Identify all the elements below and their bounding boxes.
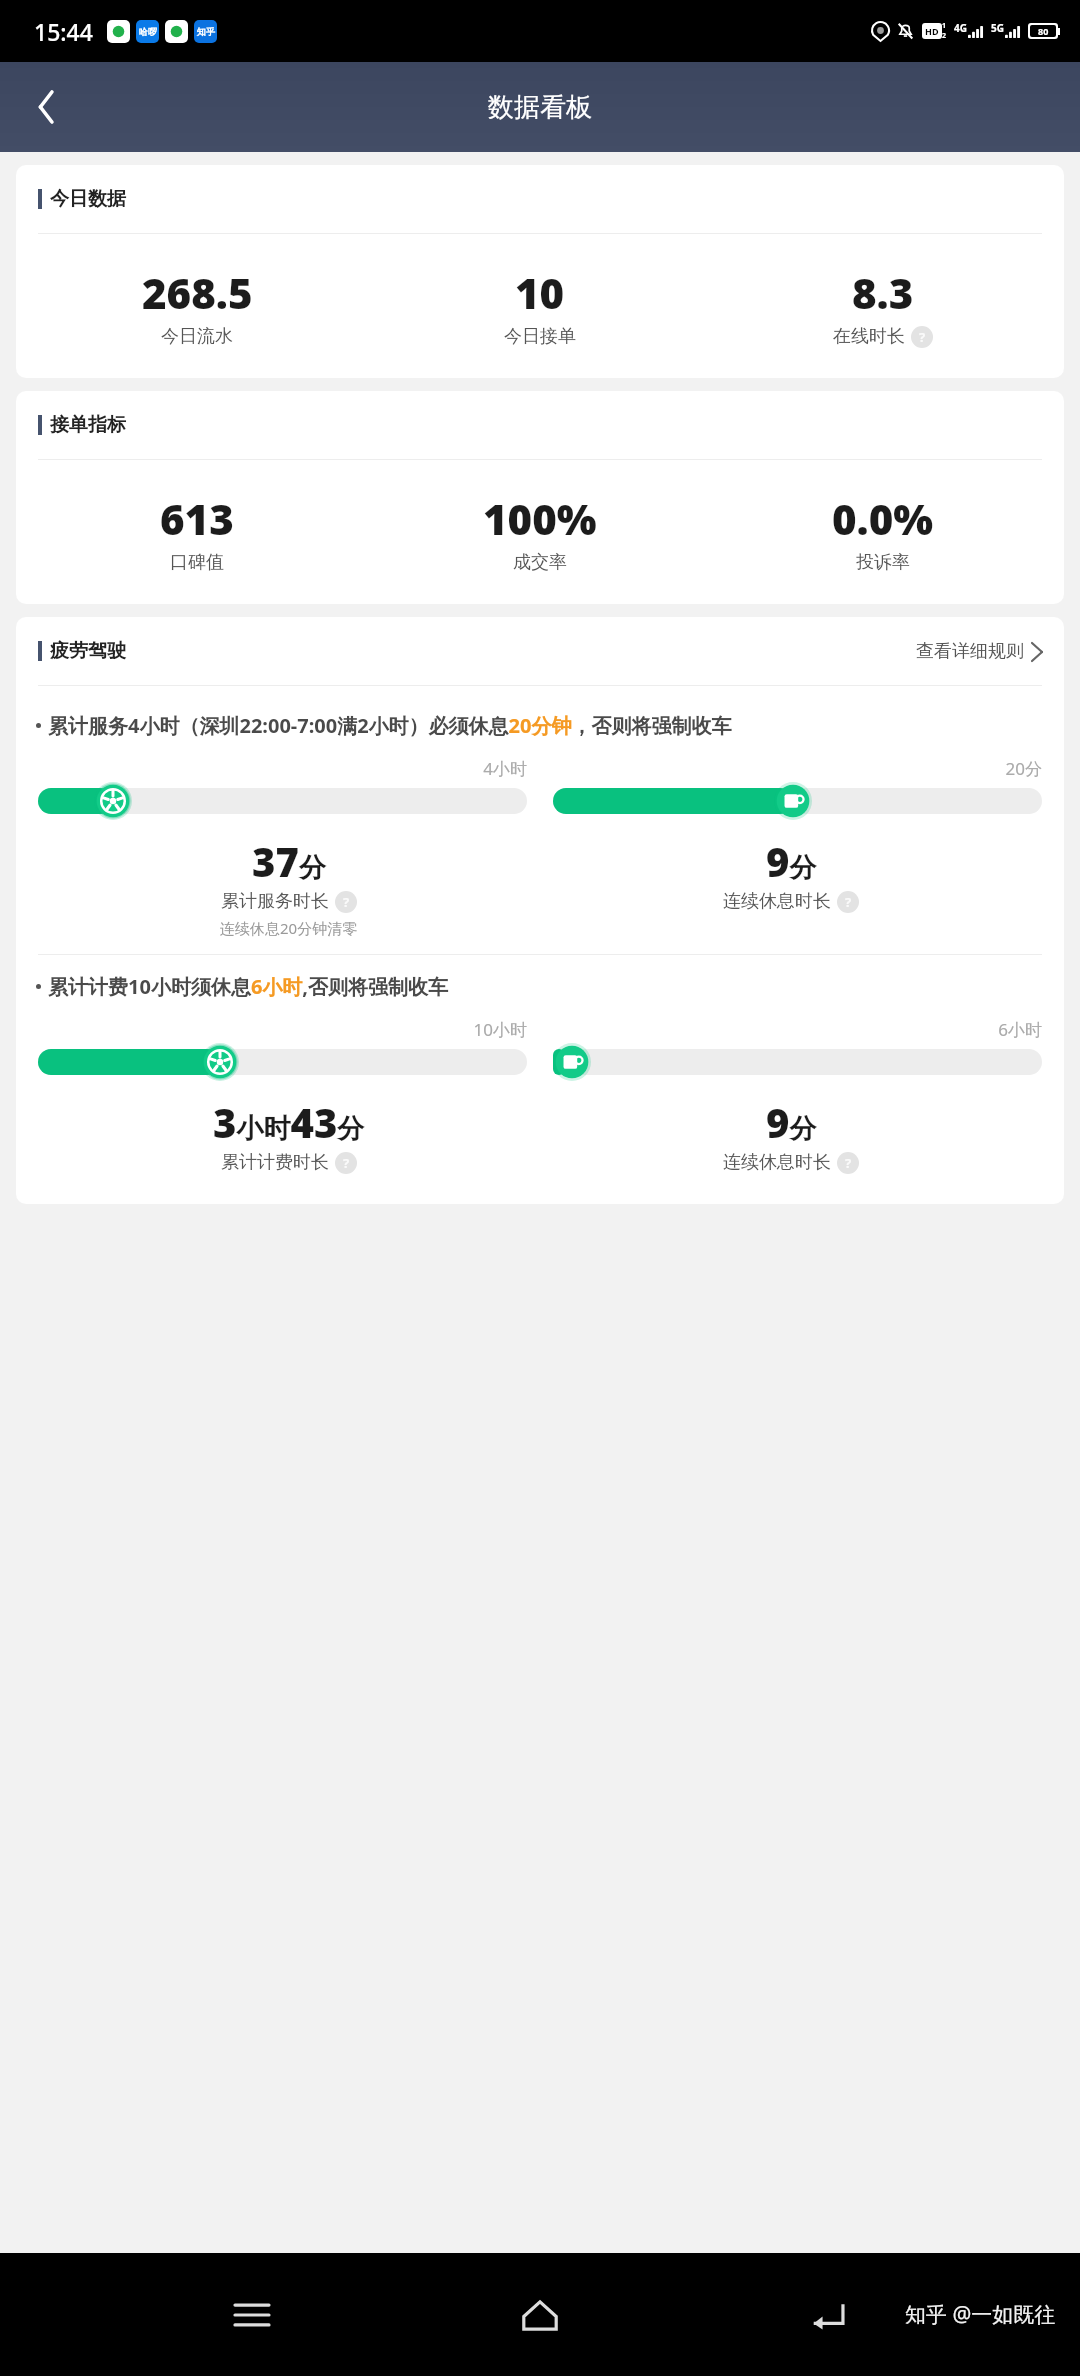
button[interactable]: Help (911, 326, 933, 348)
staticText: 4G (954, 21, 967, 35)
staticText: 100% (483, 490, 597, 547)
button[interactable]: Recent apps (216, 2279, 288, 2351)
button[interactable]: Help (335, 1152, 357, 1174)
staticText: 5G (991, 21, 1004, 35)
staticText: HD (925, 25, 939, 37)
staticText: 累计服务4小时（深圳22:00-7:00满2小时）必须休息20分钟，否则将强制收… (48, 712, 732, 739)
staticText: 10 (515, 264, 565, 321)
button[interactable]: Help (837, 891, 859, 913)
staticText: 哈啰 (139, 26, 157, 37)
staticText: ? (845, 1154, 852, 1172)
staticText: 6小时 (553, 1018, 1042, 1041)
button[interactable]: Help (837, 1152, 859, 1174)
staticText: 知乎 (197, 26, 215, 37)
staticText: 2 (942, 31, 947, 41)
staticText: 3小时43分 (213, 1095, 365, 1149)
button[interactable]: Back (792, 2279, 864, 2351)
staticText: 累计计费时长 (221, 1151, 329, 1174)
staticText: 80 (1038, 25, 1049, 37)
staticText: ? (343, 893, 350, 911)
button[interactable]: Home (504, 2279, 576, 2351)
staticText: 9分 (766, 834, 817, 888)
staticText: ? (343, 1154, 350, 1172)
staticText: 8.3 (852, 264, 914, 321)
button[interactable]: Back (22, 83, 70, 131)
staticText: 今日流水 (161, 325, 233, 348)
staticText: 268.5 (142, 264, 253, 321)
staticText: 连续休息20分钟清零 (220, 918, 358, 938)
staticText: 成交率 (513, 551, 567, 574)
staticText: 在线时长 (833, 325, 905, 348)
staticText: 口碑值 (170, 551, 224, 574)
staticText: 今日接单 (504, 325, 576, 348)
staticText: 疲劳驾驶 (50, 639, 126, 663)
staticText: 37分 (252, 834, 326, 888)
staticText: ? (845, 893, 852, 911)
staticText: 20分 (553, 757, 1042, 780)
staticText: 10小时 (38, 1018, 527, 1041)
staticText: 4小时 (38, 757, 527, 780)
staticText: 查看详细规则 (916, 640, 1024, 663)
staticText: 1 (942, 21, 947, 31)
staticText: 0.0% (832, 490, 934, 547)
staticText: 613 (160, 490, 234, 547)
staticText: 知乎 @一如既往 (905, 2300, 1056, 2329)
staticText: 今日数据 (50, 187, 126, 211)
staticText: ? (919, 328, 926, 346)
button[interactable]: 查看详细规则 (916, 640, 1042, 663)
staticText: 连续休息时长 (723, 1151, 831, 1174)
button[interactable]: Help (335, 891, 357, 913)
staticText: 9分 (766, 1095, 817, 1149)
staticText: 投诉率 (856, 551, 910, 574)
staticText: 15:44 (34, 16, 93, 47)
staticText: 累计服务时长 (221, 890, 329, 913)
staticText: 累计计费10小时须休息6小时,否则将强制收车 (48, 973, 449, 1000)
staticText: 接单指标 (50, 413, 126, 437)
staticText: 连续休息时长 (723, 890, 831, 913)
staticText: 数据看板 (488, 91, 592, 124)
